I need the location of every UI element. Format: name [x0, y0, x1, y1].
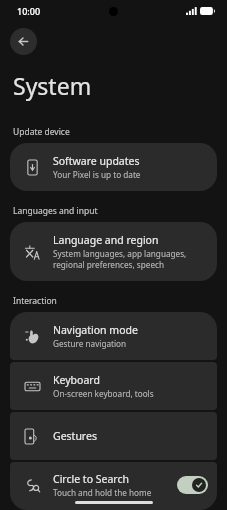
staticText: Update device: [13, 126, 70, 138]
staticText: On-screen keyboard, tools: [53, 388, 154, 399]
staticText: Keyboard: [53, 373, 100, 387]
button[interactable]: Language and region: [10, 222, 217, 281]
staticText: System: [13, 70, 92, 101]
staticText: Gestures: [53, 429, 97, 443]
button[interactable]: Circle to Search: [10, 462, 217, 510]
button[interactable]: Software updates: [10, 143, 217, 191]
staticText: Gesture navigation: [53, 338, 127, 349]
staticText: 10:00: [17, 5, 41, 17]
button[interactable]: Back: [10, 28, 37, 55]
staticText: Your Pixel is up to date: [53, 169, 141, 180]
staticText: Touch and hold the home button or the na…: [53, 487, 171, 498]
staticText: System languages, app languages, regiona…: [53, 248, 187, 270]
staticText: Navigation mode: [53, 323, 138, 337]
button[interactable]: Circle to Search toggle: [177, 476, 208, 494]
staticText: Language and region: [53, 233, 159, 247]
staticText: Software updates: [53, 154, 140, 168]
button[interactable]: Gestures: [10, 412, 217, 460]
staticText: Interaction: [13, 295, 57, 307]
button[interactable]: Navigation mode: [10, 312, 217, 360]
staticText: Circle to Search: [53, 472, 129, 486]
staticText: Languages and input: [13, 205, 98, 217]
button[interactable]: Keyboard: [10, 362, 217, 410]
